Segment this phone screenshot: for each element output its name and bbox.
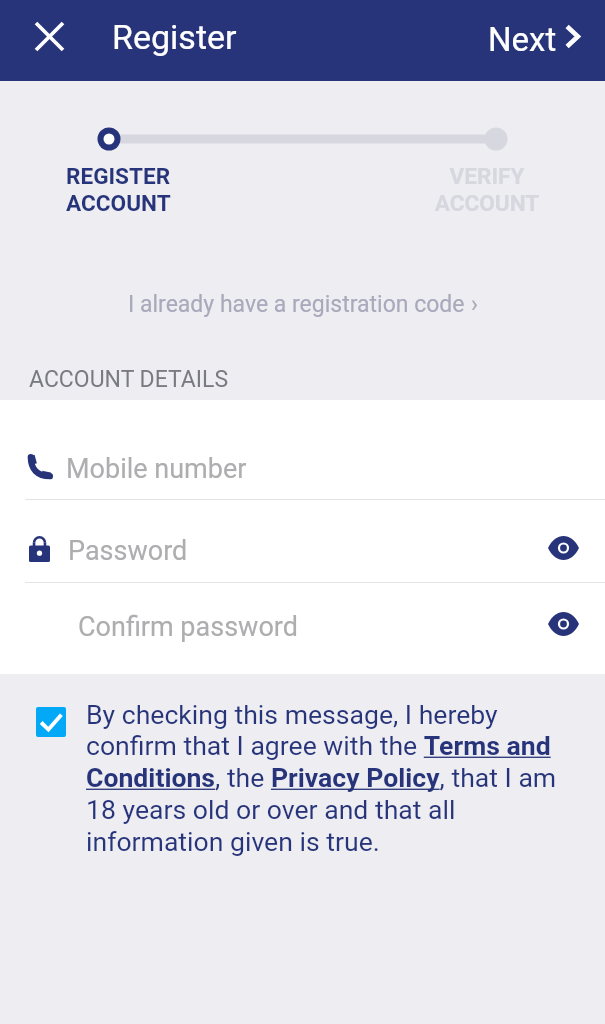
staticText: Confirm password: [78, 611, 298, 643]
button[interactable]: Password: [0, 499, 605, 582]
staticText: VERIFY ACCOUNT: [387, 163, 587, 217]
staticText: ACCOUNT DETAILS: [29, 366, 229, 393]
staticText: Mobile number: [66, 453, 247, 485]
button[interactable]: Show confirm password: [543, 603, 584, 644]
staticText: Register: [112, 17, 237, 57]
staticText: Password: [68, 535, 188, 567]
button[interactable]: Next: [483, 15, 585, 64]
staticText: By checking this message, I hereby confi…: [86, 699, 564, 858]
staticText: Next: [488, 20, 557, 59]
button[interactable]: Mobile number: [0, 400, 605, 499]
button[interactable]: Show password: [543, 527, 584, 568]
button[interactable]: I already have a registration code: [120, 286, 486, 323]
staticText: ›: [471, 291, 478, 318]
staticText: I already have a registration code: [128, 291, 465, 318]
staticText: REGISTER ACCOUNT: [66, 163, 171, 217]
button[interactable]: By checking this message, I hereby confi…: [0, 699, 605, 858]
button[interactable]: Close: [25, 12, 73, 60]
button[interactable]: Confirm password: [0, 582, 605, 674]
